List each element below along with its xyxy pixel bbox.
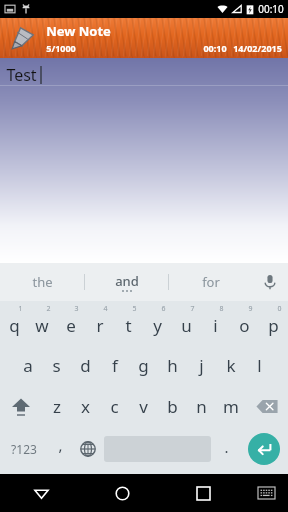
staticText: c (110, 395, 119, 418)
button[interactable]: c (100, 386, 129, 427)
button[interactable]: d (71, 345, 100, 386)
button[interactable]: k (216, 345, 245, 386)
staticText: e (66, 314, 76, 337)
staticText: 9 (248, 304, 253, 314)
button[interactable]: a (13, 345, 42, 386)
other: Edit note (8, 23, 38, 53)
staticText: b (167, 395, 178, 418)
staticText: n (196, 395, 207, 418)
button[interactable]: n (187, 386, 216, 427)
button[interactable]: 9 (230, 301, 259, 345)
button[interactable]: b (158, 386, 187, 427)
button[interactable]: 2 (28, 301, 56, 345)
button[interactable]: l (245, 345, 274, 386)
button[interactable]: Enter (248, 433, 280, 465)
staticText: j (199, 354, 204, 377)
button[interactable]: 3 (56, 301, 85, 345)
staticText: z (53, 395, 61, 418)
staticText: 3 (74, 304, 79, 314)
staticText: , (58, 435, 63, 455)
staticText: v (139, 395, 148, 418)
button[interactable]: Backspace (245, 386, 288, 427)
button[interactable]: the (0, 263, 84, 301)
staticText: p (268, 314, 279, 337)
staticText: 5/1000 (46, 42, 76, 54)
button[interactable]: Back (0, 474, 82, 512)
button[interactable]: , (47, 427, 73, 471)
button[interactable]: Switch keyboard (244, 474, 288, 512)
button[interactable]: Test (0, 58, 288, 263)
staticText: 8 (219, 304, 224, 314)
staticText: a (23, 354, 33, 377)
button[interactable]: f (100, 345, 129, 386)
button[interactable]: 5 (114, 301, 143, 345)
button[interactable]: and (85, 263, 168, 301)
button[interactable]: g (129, 345, 158, 386)
staticText: 4 (103, 304, 108, 314)
button[interactable]: m (216, 386, 245, 427)
button[interactable]: . (213, 427, 239, 471)
staticText: 14/02/2015 (233, 42, 282, 54)
staticText: i (213, 314, 218, 337)
staticText: the (32, 273, 53, 291)
staticText: t (125, 314, 132, 337)
staticText: 7 (190, 304, 195, 314)
staticText: 6 (161, 304, 166, 314)
staticText: u (181, 314, 192, 337)
button[interactable]: ?123 (0, 427, 47, 471)
staticText: q (9, 314, 20, 337)
button[interactable]: z (42, 386, 71, 427)
staticText: o (239, 314, 250, 337)
button[interactable]: for (169, 263, 252, 301)
staticText: for (202, 273, 220, 291)
button[interactable]: 6 (143, 301, 172, 345)
staticText: h (167, 354, 178, 377)
staticText: w (35, 314, 49, 337)
staticText: New Note (46, 22, 111, 40)
staticText: s (52, 354, 61, 377)
button[interactable]: Home (82, 474, 163, 512)
button[interactable]: Change language (73, 427, 102, 471)
button[interactable]: Voice input (252, 263, 288, 301)
staticText: l (257, 354, 262, 377)
staticText: 2 (46, 304, 51, 314)
button[interactable]: h (158, 345, 187, 386)
staticText: g (138, 354, 149, 377)
button[interactable]: Shift (0, 386, 42, 427)
staticText: ?123 (11, 441, 37, 457)
button[interactable]: 0 (259, 301, 288, 345)
staticText: m (223, 395, 239, 418)
staticText: and (115, 272, 139, 290)
staticText: f (112, 354, 118, 377)
button[interactable]: x (71, 386, 100, 427)
button[interactable]: v (129, 386, 158, 427)
staticText: k (226, 354, 236, 377)
staticText: 0 (277, 304, 282, 314)
staticText: 00:10 (258, 2, 284, 16)
staticText: d (80, 354, 91, 377)
staticText: 00:10 (203, 42, 227, 54)
button[interactable]: 1 (0, 301, 28, 345)
button[interactable]: Edit note (0, 18, 288, 58)
button[interactable]: 8 (201, 301, 230, 345)
button[interactable]: j (187, 345, 216, 386)
button[interactable]: Recent apps (163, 474, 244, 512)
button[interactable]: s (42, 345, 71, 386)
button[interactable]: 4 (85, 301, 114, 345)
button[interactable]: 7 (172, 301, 201, 345)
staticText: y (153, 314, 162, 337)
staticText: r (96, 314, 104, 337)
staticText: 5 (132, 304, 137, 314)
staticText: . (224, 437, 229, 457)
staticText: x (81, 395, 90, 418)
staticText: 1 (18, 304, 23, 314)
staticText: Test (6, 64, 37, 86)
